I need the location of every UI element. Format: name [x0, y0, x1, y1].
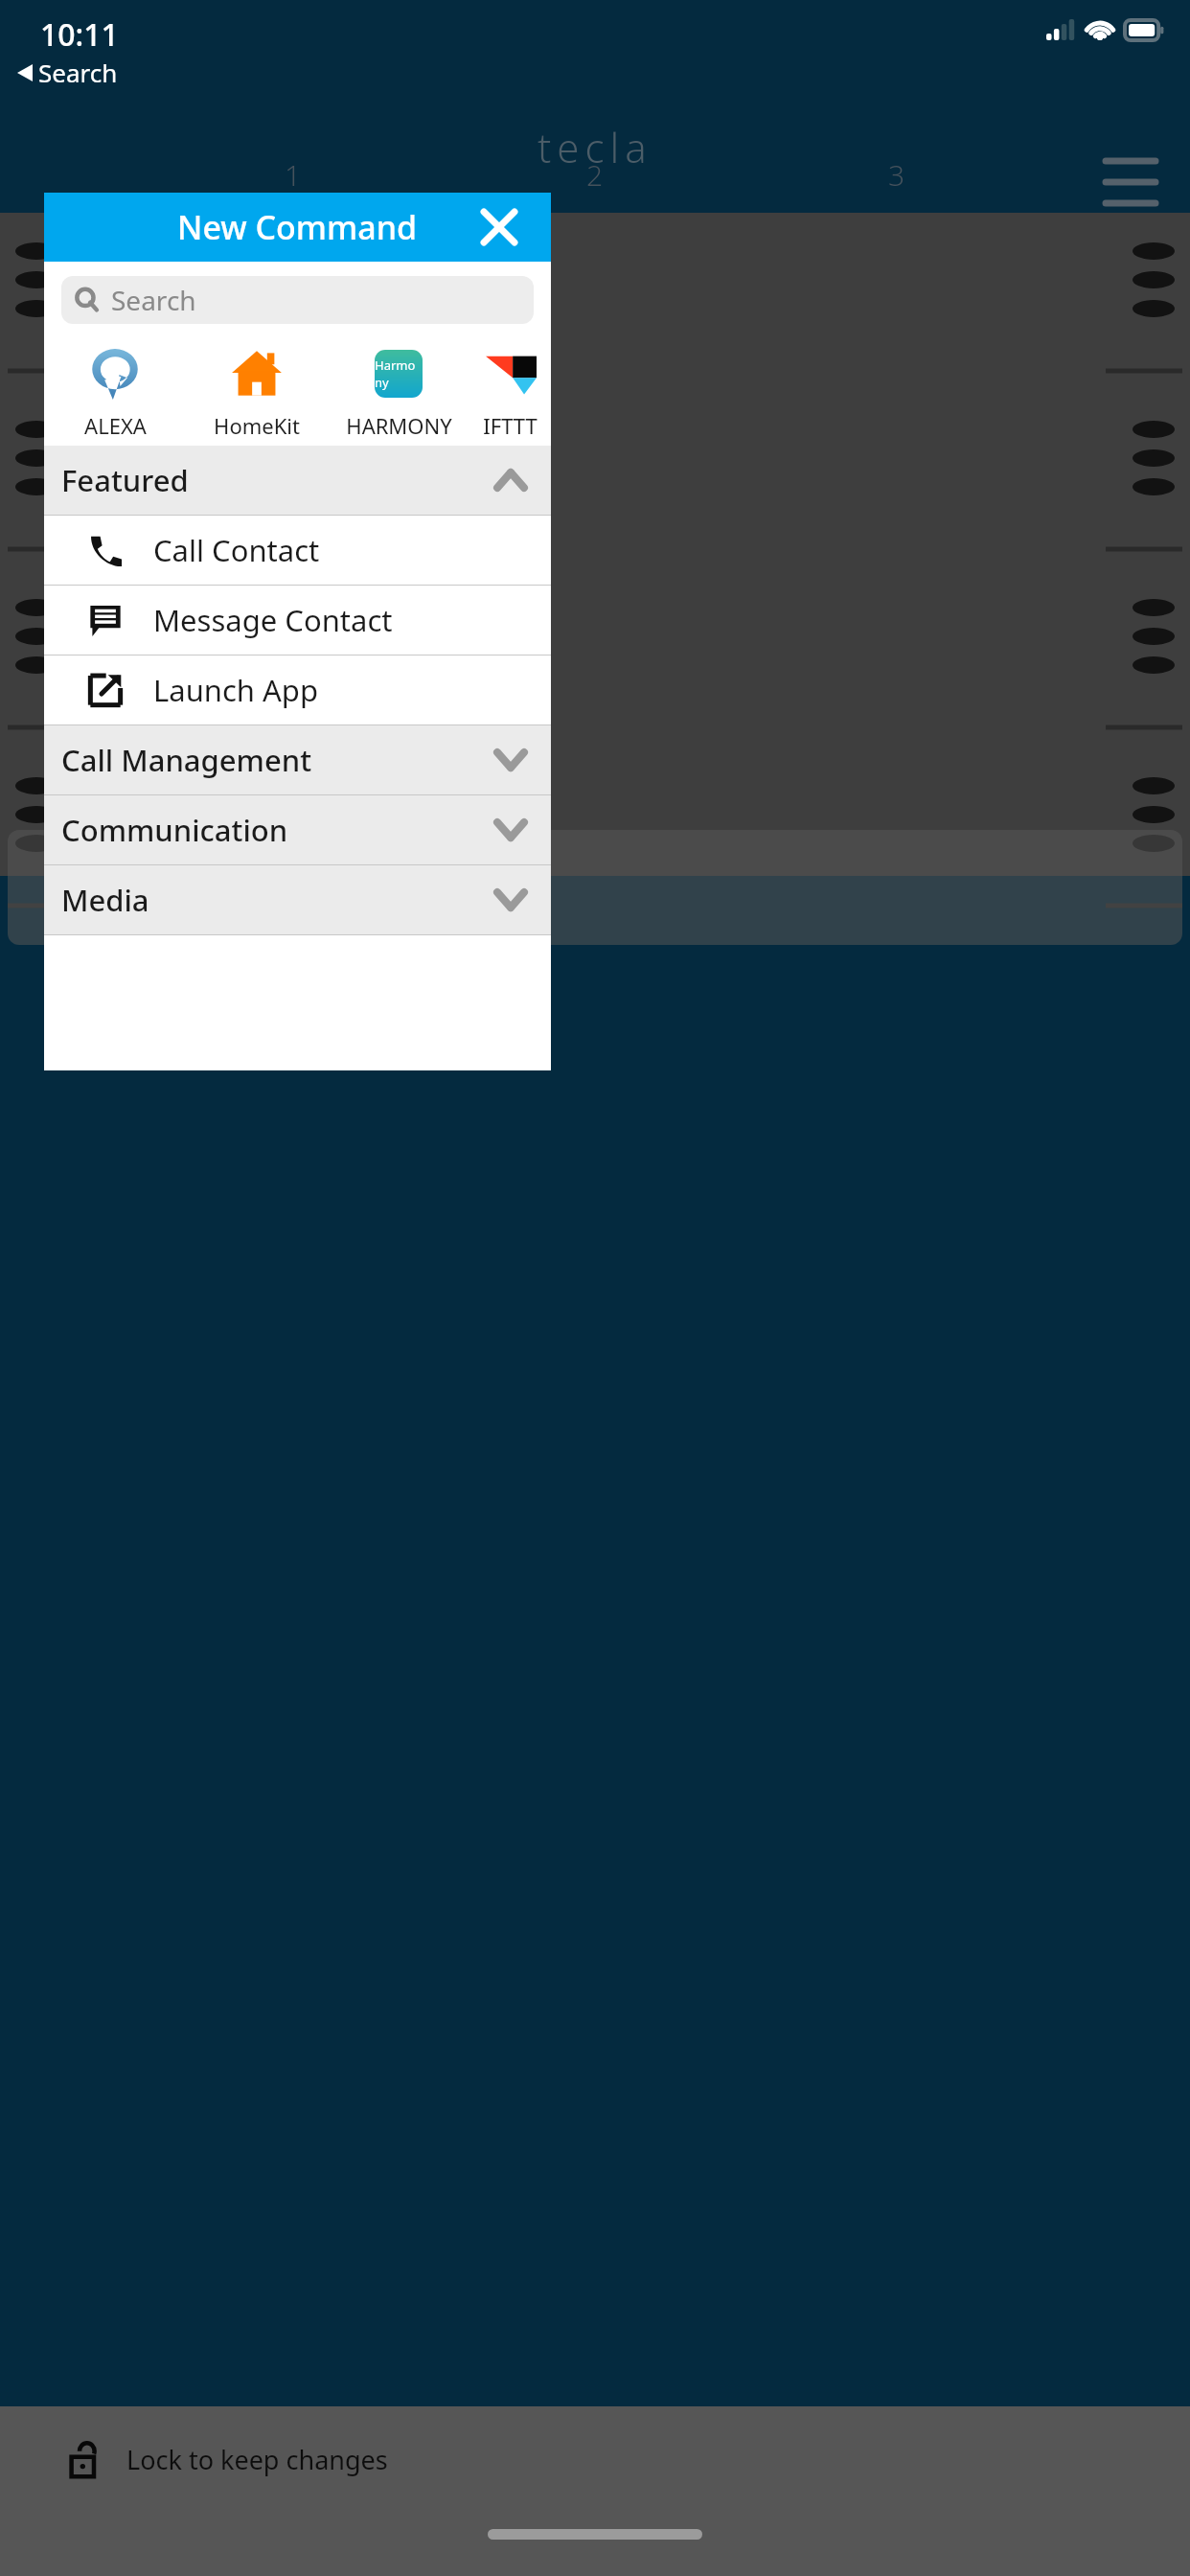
staticText: Launch App: [153, 670, 318, 710]
button[interactable]: HomeKit: [186, 338, 328, 446]
button[interactable]: Message Contact: [44, 586, 551, 655]
staticText: ALEXA: [84, 411, 147, 440]
button[interactable]: Call Contact: [44, 516, 551, 585]
button[interactable]: Featured: [44, 446, 551, 515]
staticText: Call Contact: [153, 530, 320, 570]
button[interactable]: Menu: [1106, 153, 1156, 192]
staticText: New Command: [177, 205, 418, 249]
staticText: 10:11: [40, 13, 119, 56]
staticText: Message Contact: [153, 600, 393, 640]
button[interactable]: 2: [586, 155, 604, 195]
button[interactable]: Launch App: [44, 655, 551, 724]
button[interactable]: Media: [44, 865, 551, 934]
staticText: Media: [61, 880, 149, 920]
button[interactable]: Close: [474, 202, 524, 252]
button[interactable]: 1: [285, 155, 302, 195]
button[interactable]: Harmony: [328, 338, 469, 446]
button[interactable]: Search: [61, 276, 534, 324]
button[interactable]: Call Management: [44, 725, 551, 794]
staticText: Search: [111, 282, 196, 318]
staticText: HARMONY: [346, 411, 452, 440]
staticText: Lock to keep changes: [126, 2442, 388, 2477]
staticText: Call Management: [61, 740, 312, 780]
button[interactable]: Communication: [44, 795, 551, 864]
staticText: Harmony: [375, 356, 423, 391]
button[interactable]: IFTTT: [469, 338, 551, 446]
staticText: Featured: [61, 460, 189, 500]
button[interactable]: 3: [888, 155, 905, 195]
staticText: Communication: [61, 810, 288, 850]
staticText: IFTTT: [483, 411, 538, 440]
button[interactable]: Lock to keep changes: [0, 2406, 1190, 2512]
staticText: tecla: [538, 120, 652, 174]
staticText: HomeKit: [214, 411, 300, 440]
button[interactable]: ALEXA: [44, 338, 186, 446]
button[interactable]: Search: [38, 56, 118, 89]
